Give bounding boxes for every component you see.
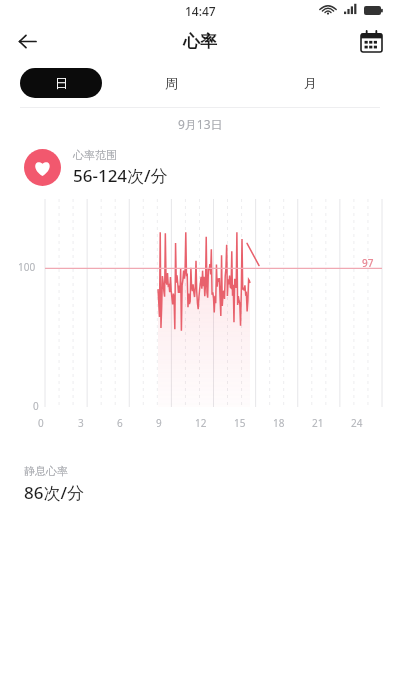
staticText: 56-124次/分 [73,164,168,187]
staticText: 18 [273,416,312,430]
staticText: 0 [33,399,39,413]
staticText: 86次/分 [24,481,84,504]
staticText: 12 [195,416,234,430]
button[interactable]: 周 [102,60,241,106]
staticText: 月 [304,75,317,91]
button[interactable]: Calendar [354,24,388,58]
staticText: 97 [362,256,374,270]
staticText: 6 [117,416,156,430]
staticText: 3 [78,416,117,430]
staticText: 21 [312,416,351,430]
staticText: 100 [18,260,36,274]
staticText: 静息心率 [24,464,68,478]
button[interactable]: Back [10,24,44,58]
staticText: 心率 [183,31,217,52]
staticText: 15 [234,416,273,430]
button[interactable]: 月 [241,60,380,106]
staticText: 14:47 [185,3,216,19]
button[interactable]: 日 [20,68,102,98]
staticText: 9 [156,416,195,430]
staticText: 9月13日 [178,116,223,132]
staticText: 0 [38,416,78,430]
staticText: 日 [55,75,68,91]
staticText: 24 [351,416,390,430]
staticText: 心率范围 [73,148,117,162]
staticText: 周 [165,75,178,91]
